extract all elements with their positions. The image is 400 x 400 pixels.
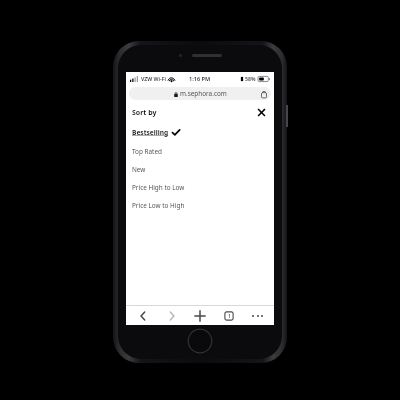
staticText: Price High to Low (132, 183, 185, 192)
staticText: New (132, 165, 146, 174)
staticText: Bestselling (132, 128, 169, 137)
button[interactable]: m.sephora.com (129, 87, 271, 100)
staticText: VZW Wi-Fi (141, 75, 166, 82)
button[interactable]: Back (131, 307, 155, 325)
button[interactable]: Price High to Low (126, 178, 274, 196)
button[interactable]: Bestselling (126, 123, 274, 142)
button[interactable]: Share (260, 90, 268, 98)
staticText: 1 (228, 313, 231, 320)
other: Home (187, 328, 213, 354)
button[interactable]: Top Rated (126, 142, 274, 160)
button[interactable]: New tab (188, 307, 212, 325)
staticText: Price Low to High (132, 201, 185, 210)
staticText: Sort by (132, 108, 157, 118)
button[interactable]: Price Low to High (126, 196, 274, 214)
staticText: 58% (245, 75, 256, 82)
staticText: Top Rated (132, 147, 162, 156)
button[interactable]: Close (255, 106, 268, 119)
button[interactable]: Tabs (217, 307, 241, 325)
button[interactable]: New (126, 160, 274, 178)
staticText: m.sephora.com (180, 89, 227, 98)
staticText: 1:16 PM (189, 75, 211, 83)
button[interactable]: Forward (160, 307, 184, 325)
button[interactable]: More (245, 307, 269, 325)
